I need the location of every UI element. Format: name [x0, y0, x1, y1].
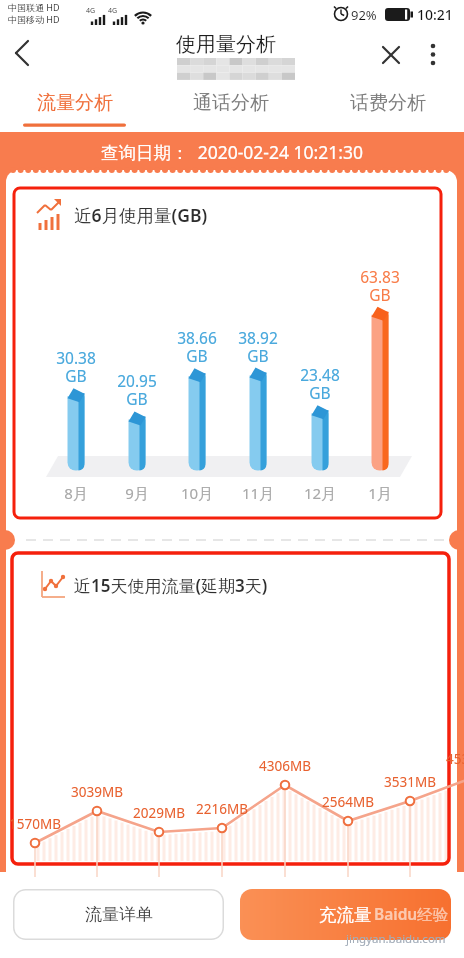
- staticText: GB: [345, 284, 415, 305]
- staticText: 4G: [86, 6, 100, 16]
- staticText: 1月: [355, 483, 405, 503]
- staticText: 2029MB: [124, 804, 194, 822]
- staticText: 11月: [233, 483, 283, 503]
- staticText: 2216MB: [187, 800, 257, 818]
- button[interactable]: 流量分析: [15, 88, 135, 126]
- staticText: GB: [162, 345, 232, 366]
- staticText: 10:21: [417, 5, 461, 24]
- staticText: Baidu经验: [374, 903, 464, 924]
- staticText: 使用量分析: [126, 32, 326, 57]
- staticText: 流量详单: [85, 904, 153, 925]
- staticText: 3531MB: [375, 773, 445, 791]
- button[interactable]: 通话分析: [171, 88, 291, 126]
- staticText: 9月: [112, 483, 162, 503]
- button[interactable]: 流量详单: [13, 889, 224, 940]
- staticText: jingyan.baidu.com: [346, 931, 464, 947]
- button[interactable]: 话费分析: [328, 88, 448, 126]
- staticText: 2564MB: [313, 793, 383, 811]
- staticText: 12月: [295, 483, 345, 503]
- staticText: 10月: [172, 483, 222, 503]
- staticText: GB: [285, 382, 355, 403]
- staticText: 充流量: [319, 904, 372, 926]
- staticText: 38.92: [223, 327, 293, 348]
- button[interactable]: [8, 38, 40, 70]
- staticText: 30.38: [41, 347, 111, 368]
- staticText: GB: [102, 388, 172, 409]
- staticText: 中国联通 HD: [8, 1, 88, 13]
- staticText: GB: [41, 365, 111, 386]
- staticText: 中国移动 HD: [8, 13, 88, 25]
- staticText: 3039MB: [62, 783, 132, 801]
- staticText: 4G: [108, 6, 122, 16]
- staticText: 63.83: [345, 266, 415, 287]
- staticText: 通话分析: [171, 91, 291, 115]
- staticText: 23.48: [285, 364, 355, 385]
- button[interactable]: [375, 40, 407, 72]
- staticText: 近6月使用量(GB): [74, 203, 334, 227]
- staticText: 近15天使用流量(延期3天): [74, 574, 374, 597]
- staticText: 20.95: [102, 370, 172, 391]
- staticText: 38.66: [162, 327, 232, 348]
- button[interactable]: [420, 40, 448, 68]
- staticText: 8月: [51, 483, 101, 503]
- staticText: 4531MB: [437, 750, 464, 768]
- button[interactable]: 充流量: [240, 889, 451, 940]
- staticText: 92%: [351, 6, 385, 24]
- staticText: 4306MB: [250, 757, 320, 775]
- staticText: 1570MB: [0, 815, 70, 833]
- staticText: 查询日期： 2020-02-24 10:21:30: [0, 140, 464, 164]
- staticText: 流量分析: [15, 91, 135, 115]
- staticText: 话费分析: [328, 91, 448, 115]
- staticText: GB: [223, 345, 293, 366]
